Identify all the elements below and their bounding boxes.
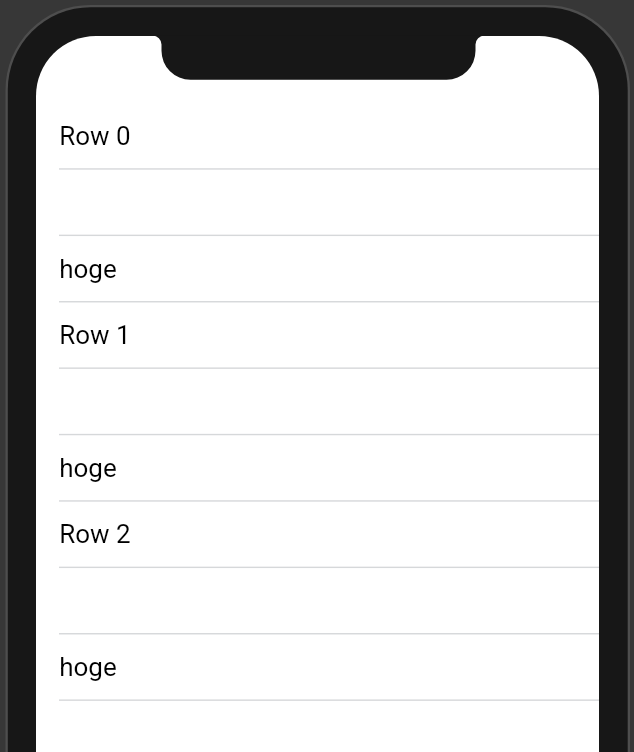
button[interactable]: hoge [36, 435, 599, 500]
staticText: Row 2 [59, 519, 131, 549]
button[interactable]: hoge [36, 634, 599, 699]
staticText: hoge [59, 652, 117, 682]
button[interactable]: Row 1 [36, 302, 599, 367]
staticText: Row 1 [59, 320, 131, 350]
button[interactable]: List item [36, 368, 599, 433]
button[interactable]: hoge [36, 236, 599, 301]
button[interactable]: List item [36, 169, 599, 234]
staticText: hoge [59, 254, 117, 284]
staticText: hoge [59, 453, 117, 483]
button[interactable]: Row 0 [36, 103, 599, 168]
staticText: Row 0 [59, 121, 131, 151]
button[interactable]: Row 2 [36, 501, 599, 566]
